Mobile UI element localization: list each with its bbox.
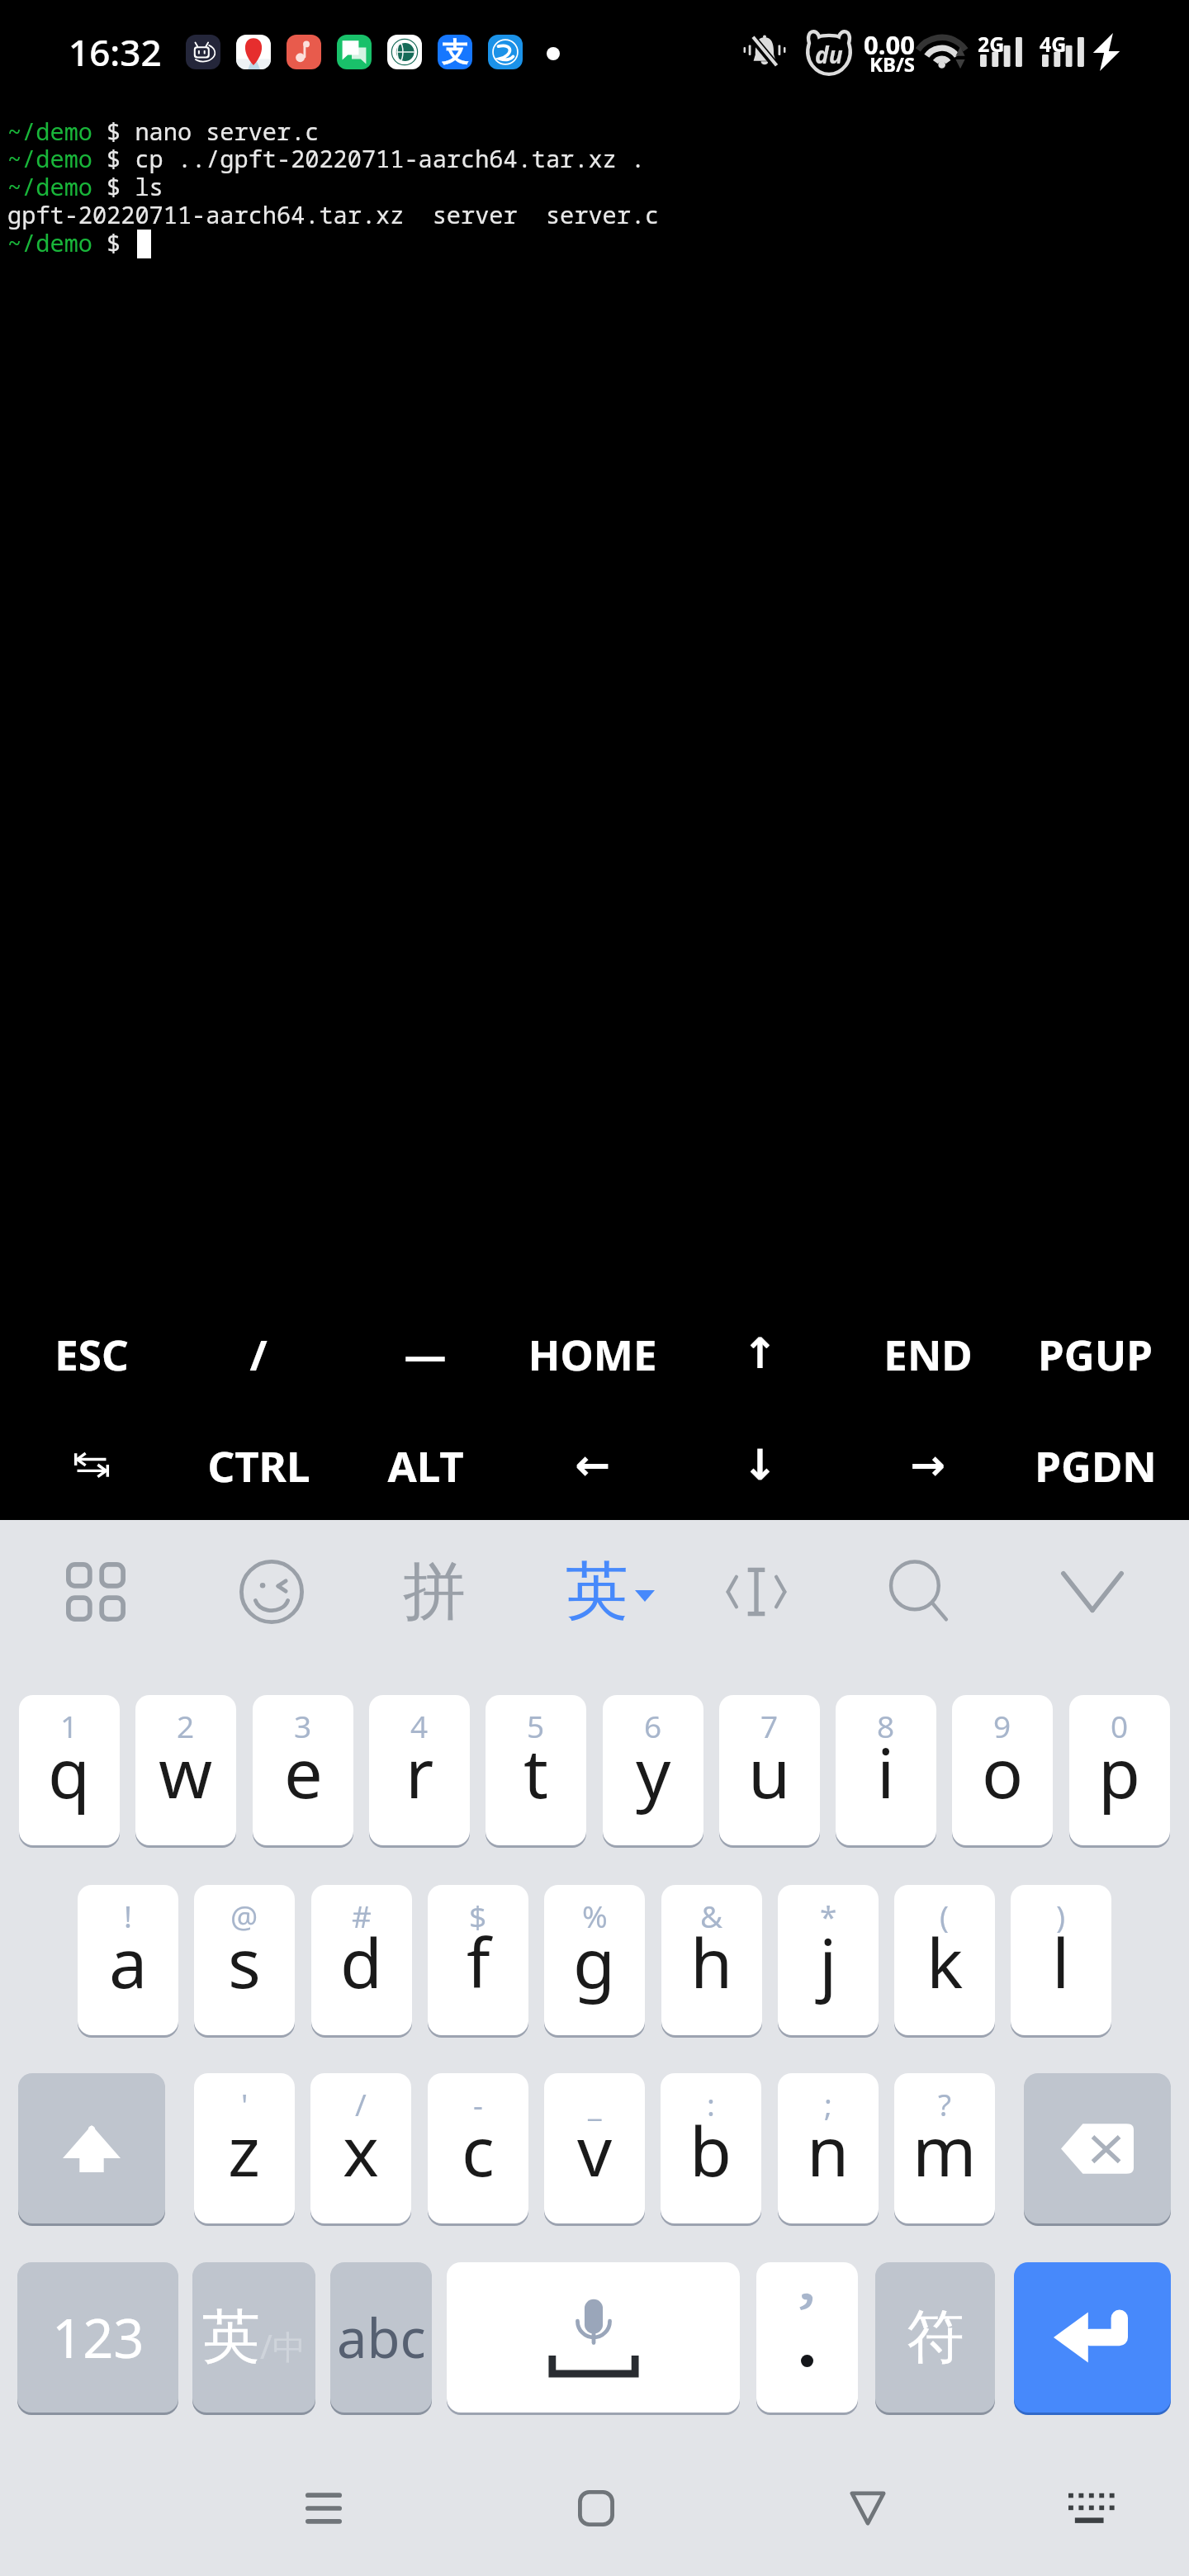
button[interactable]: _ <box>544 2073 645 2223</box>
staticText: s <box>228 1915 261 2008</box>
button[interactable]: Emoji <box>189 1509 354 1674</box>
button[interactable]: ( <box>894 1885 995 2035</box>
button[interactable]: 3 <box>253 1695 353 1845</box>
button[interactable]: ← <box>509 1408 676 1522</box>
staticText: ! <box>124 1895 132 1936</box>
button[interactable]: Back <box>810 2451 926 2566</box>
staticText: 0.00 <box>864 27 915 62</box>
staticText: ↓ <box>742 1441 778 1489</box>
button[interactable]: Shift <box>18 2073 165 2223</box>
staticText: _ <box>588 2083 602 2124</box>
button[interactable]: Cursor <box>674 1509 839 1674</box>
staticText: 英 <box>566 1552 628 1631</box>
button[interactable]: CTRL <box>175 1408 342 1522</box>
button[interactable]: 8 <box>836 1695 936 1845</box>
button[interactable]: ; <box>778 2073 879 2223</box>
button[interactable]: ALT <box>342 1408 509 1522</box>
button[interactable]: ? <box>894 2073 995 2223</box>
button[interactable]: / <box>310 2073 411 2223</box>
button[interactable]: # <box>311 1885 412 2035</box>
button[interactable]: 2 <box>135 1695 236 1845</box>
button[interactable]: 0 <box>1069 1695 1170 1845</box>
staticText: z <box>228 2103 261 2196</box>
staticText: 2 <box>177 1705 195 1746</box>
button[interactable]: * <box>778 1885 879 2035</box>
button[interactable]: % <box>544 1885 645 2035</box>
staticText: KB/S <box>869 50 916 78</box>
staticText: 8 <box>877 1705 895 1746</box>
button[interactable]: & <box>661 1885 762 2035</box>
staticText: d <box>340 1915 383 2008</box>
button[interactable]: ! <box>78 1885 178 2035</box>
staticText: ALT <box>387 1437 464 1494</box>
staticText: 2G <box>978 30 1005 58</box>
staticText: y <box>636 1725 671 1818</box>
button[interactable]: Space <box>447 2262 740 2413</box>
button[interactable]: Pinyin <box>352 1509 517 1674</box>
staticText: 5 <box>527 1705 545 1746</box>
button[interactable]: 5 <box>486 1695 586 1845</box>
button[interactable]: HOME <box>509 1300 676 1408</box>
button[interactable]: 7 <box>719 1695 820 1845</box>
button[interactable]: ) <box>1011 1885 1111 2035</box>
other: Shift <box>63 2125 121 2172</box>
button[interactable]: Letters <box>330 2262 432 2413</box>
button[interactable]: Search <box>837 1509 1002 1674</box>
button[interactable]: Switch language <box>192 2262 315 2413</box>
button[interactable]: English <box>528 1509 693 1674</box>
staticText: h <box>690 1915 733 2008</box>
staticText: / <box>355 2083 367 2124</box>
staticText: 1 <box>60 1705 78 1746</box>
staticText: 6 <box>644 1705 662 1746</box>
button[interactable]: $ <box>428 1885 528 2035</box>
staticText: $ <box>469 1895 487 1936</box>
staticText: ; <box>824 2083 832 2124</box>
staticText: & <box>700 1895 723 1936</box>
button[interactable]: @ <box>194 1885 295 2035</box>
button[interactable]: Symbols <box>875 2262 995 2413</box>
staticText: END <box>883 1325 973 1382</box>
staticText: 3 <box>294 1705 312 1746</box>
button[interactable]: Tab <box>8 1408 175 1522</box>
button[interactable]: ↑ <box>676 1300 844 1408</box>
staticText: % <box>582 1895 608 1936</box>
staticText: j <box>819 1915 837 2008</box>
button[interactable]: Symbols <box>13 1509 178 1674</box>
button[interactable]: PGDN <box>1011 1408 1179 1522</box>
button[interactable]: 4 <box>369 1695 470 1845</box>
button[interactable]: : <box>661 2073 761 2223</box>
button[interactable]: - <box>428 2073 528 2223</box>
button[interactable]: Backspace <box>1024 2073 1171 2223</box>
staticText: HOME <box>528 1325 657 1382</box>
button[interactable]: Home <box>538 2451 654 2566</box>
button[interactable]: ESC <box>8 1300 175 1408</box>
button[interactable]: Hide <box>1010 1509 1175 1674</box>
button[interactable]: ↓ <box>676 1408 844 1522</box>
staticText: * <box>820 1895 837 1936</box>
other: Wi-Fi <box>921 34 968 69</box>
button[interactable]: ' <box>194 2073 295 2223</box>
staticText: PGUP <box>1038 1325 1153 1382</box>
staticText: k <box>926 1915 964 2008</box>
staticText: p <box>1098 1725 1141 1818</box>
button[interactable]: — <box>342 1300 509 1408</box>
button[interactable]: Numbers <box>17 2262 178 2413</box>
button[interactable]: 6 <box>603 1695 703 1845</box>
staticText: : <box>707 2083 715 2124</box>
button[interactable]: → <box>844 1408 1011 1522</box>
staticText: o <box>982 1725 1024 1818</box>
staticText: 拼 <box>403 1552 466 1631</box>
staticText: 7 <box>760 1705 779 1746</box>
button[interactable]: Comma and period <box>756 2262 858 2413</box>
button[interactable]: 1 <box>19 1695 120 1845</box>
staticText: v <box>577 2103 613 2196</box>
other: Backspace <box>1061 2123 1134 2175</box>
button[interactable]: Hide keyboard <box>1034 2451 1149 2566</box>
button[interactable]: END <box>844 1300 1011 1408</box>
button[interactable]: 9 <box>952 1695 1053 1845</box>
button[interactable]: / <box>175 1300 342 1408</box>
button[interactable]: Enter <box>1014 2262 1171 2413</box>
button[interactable]: Recent apps <box>266 2451 381 2566</box>
button[interactable]: PGUP <box>1011 1300 1179 1408</box>
staticText: 9 <box>993 1705 1011 1746</box>
